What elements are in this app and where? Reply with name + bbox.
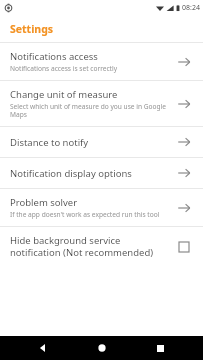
button[interactable]: Distance to notify [0,127,203,157]
staticText: 08:24 [182,3,200,13]
button[interactable]: Notification display options [0,158,203,188]
staticText: Settings [10,22,54,36]
button[interactable]: Home [87,336,117,360]
button[interactable]: Recents [145,336,175,360]
staticText: Notifications access [10,50,98,63]
button[interactable]: Back [28,336,58,360]
button[interactable]: Notifications access [0,43,203,80]
button[interactable]: Hide background service notification che… [179,242,189,252]
staticText: Problem solver [10,196,78,209]
staticText: Notifications access is set correctly [10,64,118,73]
button[interactable]: Change unit of measure [0,81,203,126]
button[interactable]: Problem solver [0,189,203,226]
staticText: If the app doesn't work as expected run … [10,210,160,219]
staticText: Select which unit of measure do you use … [10,102,167,119]
button[interactable]: Hide background service notification (No… [0,227,203,266]
staticText: Hide background service notification (No… [10,234,167,259]
staticText: Notification display options [10,167,132,180]
staticText: Distance to notify [10,136,89,149]
staticText: Change unit of measure [10,88,118,101]
